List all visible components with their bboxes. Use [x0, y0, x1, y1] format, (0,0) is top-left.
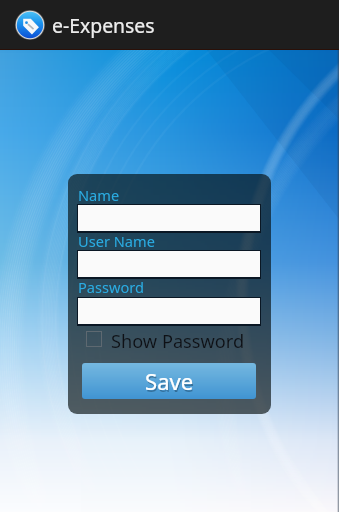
- button[interactable]: Show Password: [86, 329, 245, 349]
- staticText: e-Expenses: [52, 12, 155, 38]
- staticText: User Name: [78, 231, 155, 251]
- button[interactable]: App icon: [15, 10, 45, 40]
- staticText: Show Password: [111, 329, 245, 349]
- button[interactable]: Save: [82, 363, 256, 399]
- staticText: Save: [145, 366, 194, 396]
- staticText: Password: [78, 277, 145, 297]
- staticText: Save: [146, 368, 195, 398]
- staticText: Name: [78, 185, 120, 205]
